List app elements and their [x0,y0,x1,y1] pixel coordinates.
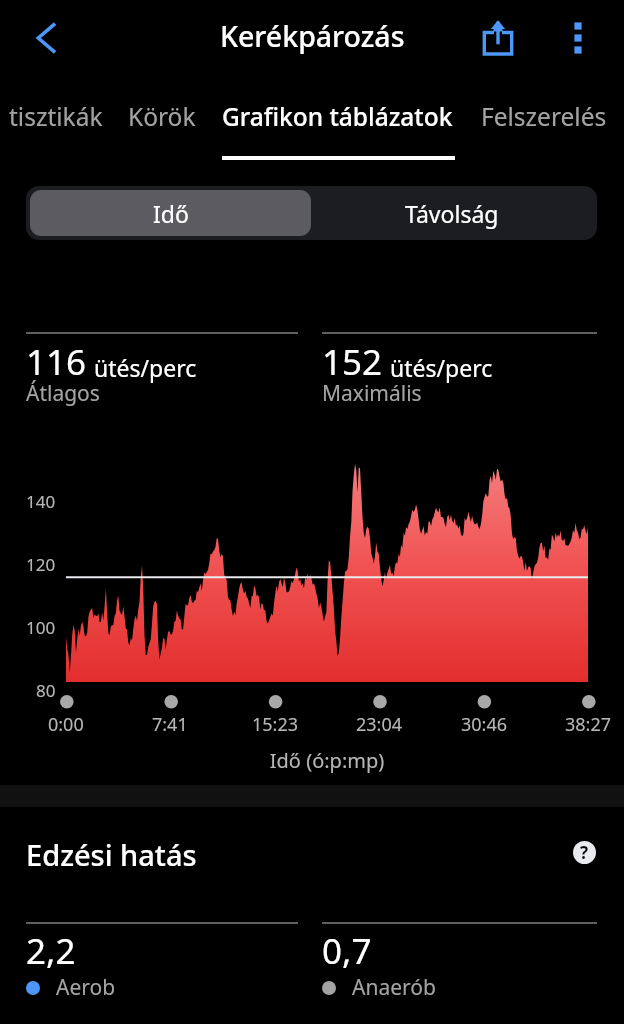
staticText: Távolság [405,198,499,229]
staticText: 0:00 [48,712,84,737]
staticText: Idő [153,198,189,229]
staticText: 116 [26,338,87,386]
staticText: 30:46 [461,712,508,737]
staticText: ütés/perc [94,352,197,383]
button[interactable]: Körök [114,92,210,140]
button[interactable]: Share [467,0,529,76]
staticText: Átlagos [26,379,100,408]
staticText: Anaerób [352,973,436,1002]
button[interactable]: tisztikák [0,92,111,140]
staticText: 7:41 [152,712,188,737]
button[interactable]: Help [562,830,606,874]
button[interactable]: Grafikon táblázatok [205,92,470,140]
staticText: 0,7 [322,927,372,975]
staticText: ütés/perc [390,352,493,383]
button[interactable]: Távolság [311,190,593,236]
staticText: 120 [26,553,56,576]
staticText: Grafikon táblázatok [222,100,453,133]
staticText: 100 [26,616,56,639]
staticText: tisztikák [9,100,103,133]
staticText: Maximális [322,379,422,408]
staticText: Aerob [56,973,116,1002]
button[interactable]: Idő [30,190,311,236]
staticText: Körök [128,100,196,133]
staticText: 2,2 [26,927,76,975]
staticText: 152 [322,338,383,386]
button[interactable]: Felszerelés [464,92,624,140]
staticText: 15:23 [252,712,299,737]
staticText: 38:27 [565,712,612,737]
staticText: Idő (ó:p:mp) [66,747,588,774]
staticText: 140 [26,490,56,513]
staticText: Felszerelés [481,100,607,133]
button[interactable]: Back [16,0,76,76]
staticText: Kerékpározás [220,17,405,56]
staticText: Edzési hatás [26,835,197,874]
staticText: 23:04 [356,712,403,737]
staticText: ? [580,841,589,864]
button[interactable]: More options [547,0,609,76]
staticText: 80 [36,679,56,702]
